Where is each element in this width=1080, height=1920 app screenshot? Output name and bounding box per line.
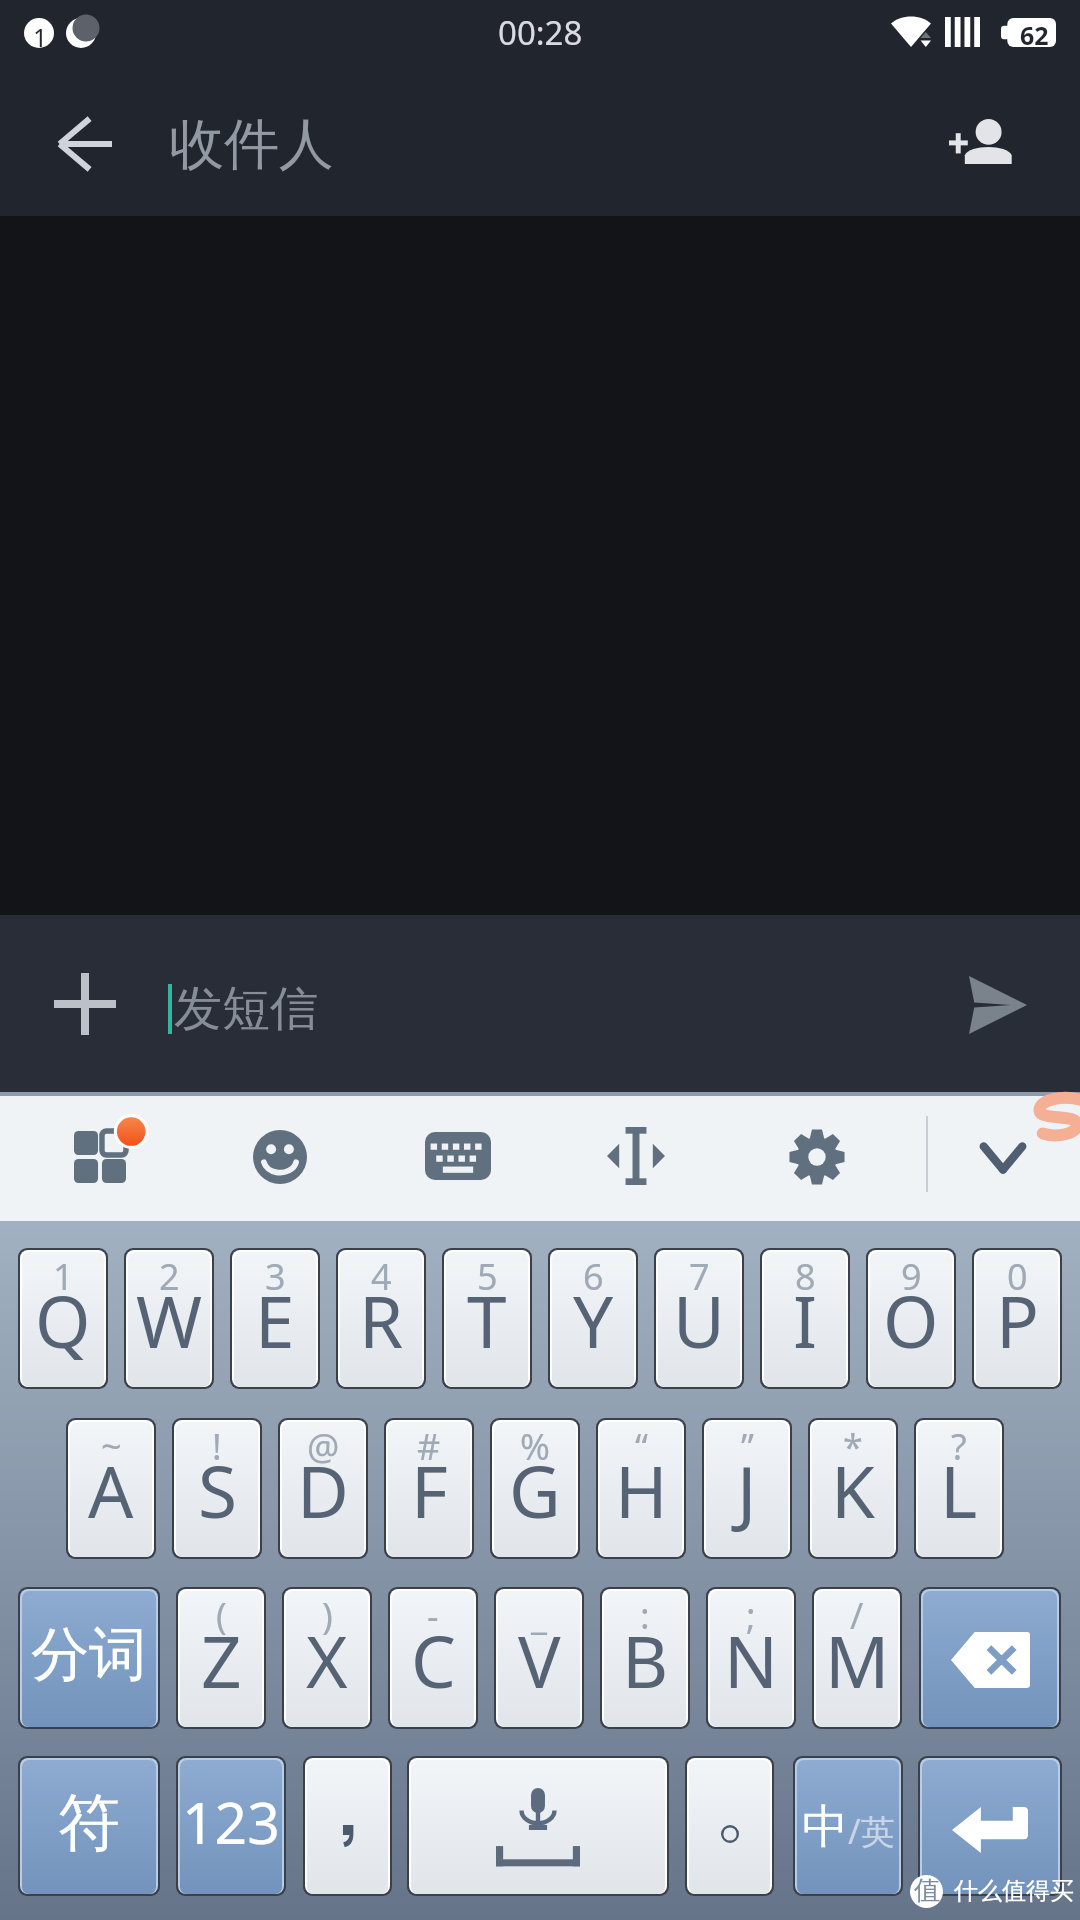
staticText: 收件人 bbox=[169, 110, 334, 179]
button[interactable]: ? bbox=[918, 1422, 1000, 1557]
button[interactable]: 3 bbox=[234, 1252, 316, 1387]
button[interactable]: Comma bbox=[307, 1760, 388, 1894]
staticText: * bbox=[843, 1422, 863, 1471]
staticText: : bbox=[640, 1591, 650, 1640]
staticText: 符 bbox=[58, 1784, 120, 1862]
staticText: 1 bbox=[53, 1252, 74, 1301]
button[interactable]: ; bbox=[710, 1591, 792, 1727]
button[interactable]: 4 bbox=[340, 1252, 422, 1387]
staticText: Q bbox=[35, 1272, 91, 1369]
staticText: / bbox=[850, 1591, 864, 1640]
staticText: 123 bbox=[182, 1783, 280, 1861]
staticText: B bbox=[622, 1612, 669, 1709]
button[interactable]: 9 bbox=[870, 1252, 952, 1387]
button[interactable]: 1 bbox=[22, 1252, 104, 1387]
staticText: 4 bbox=[371, 1252, 392, 1301]
button[interactable]: * bbox=[812, 1422, 894, 1557]
button[interactable]: Space bbox=[411, 1760, 665, 1894]
button[interactable]: Hide keyboard bbox=[962, 1123, 1044, 1193]
staticText: 8 bbox=[795, 1252, 816, 1301]
button[interactable]: Keyboard layout bbox=[407, 1114, 509, 1198]
staticText: ; bbox=[746, 1591, 756, 1640]
staticText: 分词 bbox=[31, 1618, 147, 1691]
button[interactable]: Switch Chinese English bbox=[797, 1760, 899, 1894]
staticText: /英 bbox=[848, 1808, 895, 1854]
staticText: ~ bbox=[101, 1422, 122, 1471]
button[interactable]: 7 bbox=[658, 1252, 740, 1387]
button[interactable]: Move cursor bbox=[589, 1109, 683, 1203]
button[interactable]: 8 bbox=[764, 1252, 846, 1387]
staticText: ( bbox=[216, 1591, 227, 1640]
staticText: ? bbox=[951, 1422, 967, 1471]
button[interactable]: 0 bbox=[976, 1252, 1058, 1387]
button[interactable]: Back bbox=[28, 88, 140, 200]
staticText: O bbox=[883, 1272, 939, 1369]
button[interactable]: ) bbox=[286, 1591, 368, 1727]
staticText: A bbox=[88, 1442, 134, 1539]
button[interactable]: : bbox=[604, 1591, 686, 1727]
staticText: C bbox=[411, 1612, 456, 1709]
staticText: @ bbox=[307, 1422, 340, 1471]
staticText: J bbox=[737, 1442, 757, 1539]
button[interactable]: ( bbox=[180, 1591, 262, 1727]
staticText: G bbox=[509, 1442, 561, 1539]
staticText: 2 bbox=[159, 1252, 180, 1301]
staticText: W bbox=[136, 1272, 203, 1369]
staticText: I bbox=[793, 1272, 818, 1369]
staticText: % bbox=[520, 1422, 550, 1471]
button[interactable]: Add recipient bbox=[926, 89, 1036, 199]
button[interactable]: Attach bbox=[30, 949, 140, 1059]
staticText: 什么值得买 bbox=[954, 1876, 1074, 1906]
button[interactable]: / bbox=[816, 1591, 898, 1727]
button[interactable]: Enter bbox=[922, 1760, 1058, 1894]
staticText: F bbox=[411, 1442, 448, 1539]
button[interactable]: Period bbox=[689, 1760, 770, 1894]
staticText: 0 bbox=[1007, 1252, 1028, 1301]
staticText: S bbox=[198, 1442, 237, 1539]
staticText: U bbox=[673, 1272, 725, 1369]
staticText: Z bbox=[201, 1612, 242, 1709]
button[interactable]: % bbox=[494, 1422, 576, 1557]
staticText: 值 bbox=[914, 1874, 940, 1907]
staticText: H bbox=[615, 1442, 668, 1539]
button[interactable]: Backspace bbox=[923, 1591, 1057, 1727]
button[interactable]: 6 bbox=[552, 1252, 634, 1387]
staticText: L bbox=[940, 1442, 978, 1539]
button[interactable]: 123 bbox=[180, 1760, 282, 1894]
staticText: R bbox=[359, 1272, 404, 1369]
button[interactable]: Settings bbox=[771, 1111, 863, 1203]
staticText: _ bbox=[531, 1591, 547, 1640]
staticText: D bbox=[297, 1442, 349, 1539]
staticText: V bbox=[518, 1612, 561, 1709]
staticText: 5 bbox=[477, 1252, 498, 1301]
button[interactable]: 分词 bbox=[22, 1591, 156, 1727]
staticText: 62 bbox=[1020, 18, 1049, 47]
button[interactable]: _ bbox=[498, 1591, 580, 1727]
staticText: ” bbox=[741, 1422, 754, 1471]
staticText: # bbox=[417, 1422, 441, 1471]
button[interactable]: ~ bbox=[70, 1422, 152, 1557]
button[interactable]: - bbox=[392, 1591, 474, 1727]
button[interactable]: Send bbox=[948, 954, 1048, 1054]
staticText: 1 bbox=[33, 20, 48, 54]
button[interactable]: ! bbox=[176, 1422, 258, 1557]
button[interactable]: Emoji bbox=[235, 1112, 325, 1202]
staticText: 6 bbox=[583, 1252, 604, 1301]
button[interactable]: # bbox=[388, 1422, 470, 1557]
staticText: ! bbox=[212, 1422, 222, 1471]
button[interactable]: 符 bbox=[22, 1760, 156, 1894]
staticText: ) bbox=[322, 1591, 333, 1640]
staticText: 发短信 bbox=[174, 979, 318, 1039]
button[interactable]: 5 bbox=[446, 1252, 528, 1387]
button[interactable]: Apps bbox=[56, 1113, 144, 1201]
button[interactable]: 2 bbox=[128, 1252, 210, 1387]
button[interactable]: ” bbox=[706, 1422, 788, 1557]
button[interactable]: “ bbox=[600, 1422, 682, 1557]
staticText: 中 bbox=[802, 1798, 848, 1856]
staticText: 9 bbox=[901, 1252, 922, 1301]
button[interactable]: @ bbox=[282, 1422, 364, 1557]
staticText: T bbox=[467, 1272, 507, 1369]
staticText: 3 bbox=[265, 1252, 286, 1301]
staticText: - bbox=[427, 1591, 439, 1640]
staticText: E bbox=[255, 1272, 295, 1369]
